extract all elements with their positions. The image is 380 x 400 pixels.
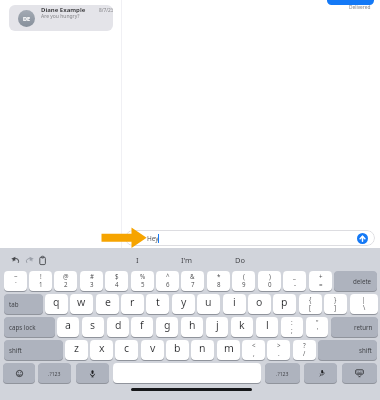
button[interactable]: $	[105, 271, 128, 291]
button[interactable]: @	[54, 271, 77, 291]
button[interactable]: }	[324, 294, 347, 314]
button[interactable]: |	[350, 294, 378, 314]
button[interactable]	[304, 363, 337, 383]
staticText: +	[319, 272, 323, 280]
button[interactable]: l	[256, 317, 278, 337]
button[interactable]: x	[90, 340, 113, 360]
staticText: .?123	[48, 370, 61, 377]
button[interactable]: I	[128, 254, 146, 265]
button[interactable]: v	[141, 340, 164, 360]
button[interactable]: tab	[4, 294, 43, 314]
button[interactable]: delete	[334, 271, 377, 291]
button[interactable]: ?	[293, 340, 316, 360]
button[interactable]: Do	[231, 254, 249, 265]
button[interactable]: p	[273, 294, 296, 314]
button[interactable]: DE	[9, 5, 113, 31]
button[interactable]	[24, 250, 37, 264]
button[interactable]: .?123	[265, 363, 300, 383]
button[interactable]: j	[206, 317, 228, 337]
button[interactable]: z	[65, 340, 88, 360]
button[interactable]	[113, 363, 261, 383]
button[interactable]: return	[331, 317, 378, 337]
button[interactable]	[9, 250, 22, 264]
button[interactable]: i	[223, 294, 246, 314]
button[interactable]: *	[207, 271, 230, 291]
staticText: &	[190, 272, 195, 280]
staticText: e	[105, 295, 111, 309]
button[interactable]: +	[309, 271, 332, 291]
button[interactable]: <	[242, 340, 265, 360]
staticText: Are you hungry?	[41, 13, 80, 20]
staticText: {	[309, 295, 312, 303]
staticText: t	[156, 295, 160, 309]
staticText: s	[90, 318, 96, 332]
button[interactable]: d	[107, 317, 129, 337]
button[interactable]: b	[166, 340, 189, 360]
staticText: 4	[115, 280, 119, 288]
button[interactable]: %	[131, 271, 154, 291]
staticText: y	[181, 295, 187, 309]
staticText: =	[319, 280, 323, 288]
staticText: n	[199, 341, 206, 355]
button[interactable]: q	[45, 294, 68, 314]
button[interactable]: f	[131, 317, 153, 337]
button[interactable]	[38, 250, 50, 264]
button[interactable]: !	[29, 271, 52, 291]
button[interactable]: )	[258, 271, 281, 291]
button[interactable]: y	[172, 294, 195, 314]
button[interactable]: #	[80, 271, 103, 291]
staticText: *	[217, 272, 221, 280]
button[interactable]: I'm	[178, 254, 196, 265]
button[interactable]: n	[191, 340, 214, 360]
staticText: q	[53, 295, 60, 309]
button[interactable]	[3, 363, 35, 383]
button[interactable]: m	[217, 340, 240, 360]
button[interactable]	[125, 230, 375, 246]
button[interactable]: shift	[318, 340, 377, 360]
button[interactable]: (	[232, 271, 255, 291]
button[interactable]: _	[283, 271, 306, 291]
button[interactable]: .?123	[38, 363, 71, 383]
staticText: caps lock	[9, 323, 36, 331]
button[interactable]: e	[96, 294, 119, 314]
staticText: delete	[353, 277, 372, 285]
button[interactable]: u	[197, 294, 220, 314]
button[interactable]: >	[267, 340, 290, 360]
staticText: I	[136, 255, 139, 265]
staticText: l	[266, 318, 269, 332]
button[interactable]: g	[156, 317, 178, 337]
staticText: \	[363, 303, 366, 311]
button[interactable]: "	[306, 317, 328, 337]
staticText: 6	[166, 280, 170, 288]
button[interactable]: &	[181, 271, 204, 291]
staticText: w	[77, 295, 86, 309]
button[interactable]: {	[299, 294, 322, 314]
staticText: %	[140, 272, 146, 280]
staticText: ]	[334, 303, 337, 311]
button[interactable]: w	[70, 294, 93, 314]
staticText: $	[115, 272, 119, 280]
button[interactable]: ^	[156, 271, 179, 291]
button[interactable]: caps lock	[4, 317, 55, 337]
button[interactable]: ~	[4, 271, 27, 291]
staticText: Do	[235, 255, 246, 265]
staticText: >	[277, 341, 281, 349]
button[interactable]: a	[57, 317, 79, 337]
button[interactable]	[357, 233, 368, 244]
button[interactable]: c	[115, 340, 138, 360]
button[interactable]: h	[181, 317, 203, 337]
button[interactable]: o	[248, 294, 271, 314]
staticText: ^	[166, 272, 170, 280]
staticText: I'm	[181, 255, 193, 265]
button[interactable]: shift	[4, 340, 63, 360]
button[interactable]: k	[231, 317, 253, 337]
button[interactable]: s	[82, 317, 104, 337]
staticText: <	[252, 341, 256, 349]
button[interactable]	[76, 363, 109, 383]
button[interactable]: :	[281, 317, 303, 337]
button[interactable]	[342, 363, 377, 383]
button[interactable]: r	[121, 294, 144, 314]
button[interactable]: t	[146, 294, 169, 314]
staticText: (	[243, 272, 245, 280]
staticText: o	[256, 295, 263, 309]
